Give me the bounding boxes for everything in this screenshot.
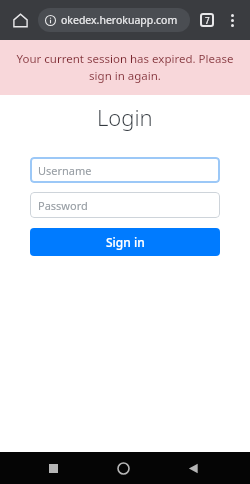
staticText: Your current session has expired. Please… (14, 51, 236, 84)
staticText: Password (38, 198, 88, 213)
button[interactable]: Home (6, 6, 34, 34)
staticText: Login (97, 102, 153, 132)
button[interactable]: More options (220, 8, 244, 32)
button[interactable]: Username (30, 157, 220, 183)
button[interactable]: Recent apps (36, 452, 70, 484)
button[interactable]: Home (106, 452, 140, 484)
button[interactable]: Back (176, 452, 210, 484)
staticText: Sign in (106, 234, 145, 250)
staticText: okedex.herokuapp.com (61, 13, 178, 27)
button[interactable]: okedex.herokuapp.com (38, 8, 190, 32)
button[interactable]: Sign in (30, 228, 220, 256)
button[interactable]: Tabs: 7 open (194, 7, 220, 33)
button[interactable]: Password (30, 192, 220, 218)
staticText: Username (38, 163, 92, 178)
staticText: 7 (205, 15, 210, 26)
